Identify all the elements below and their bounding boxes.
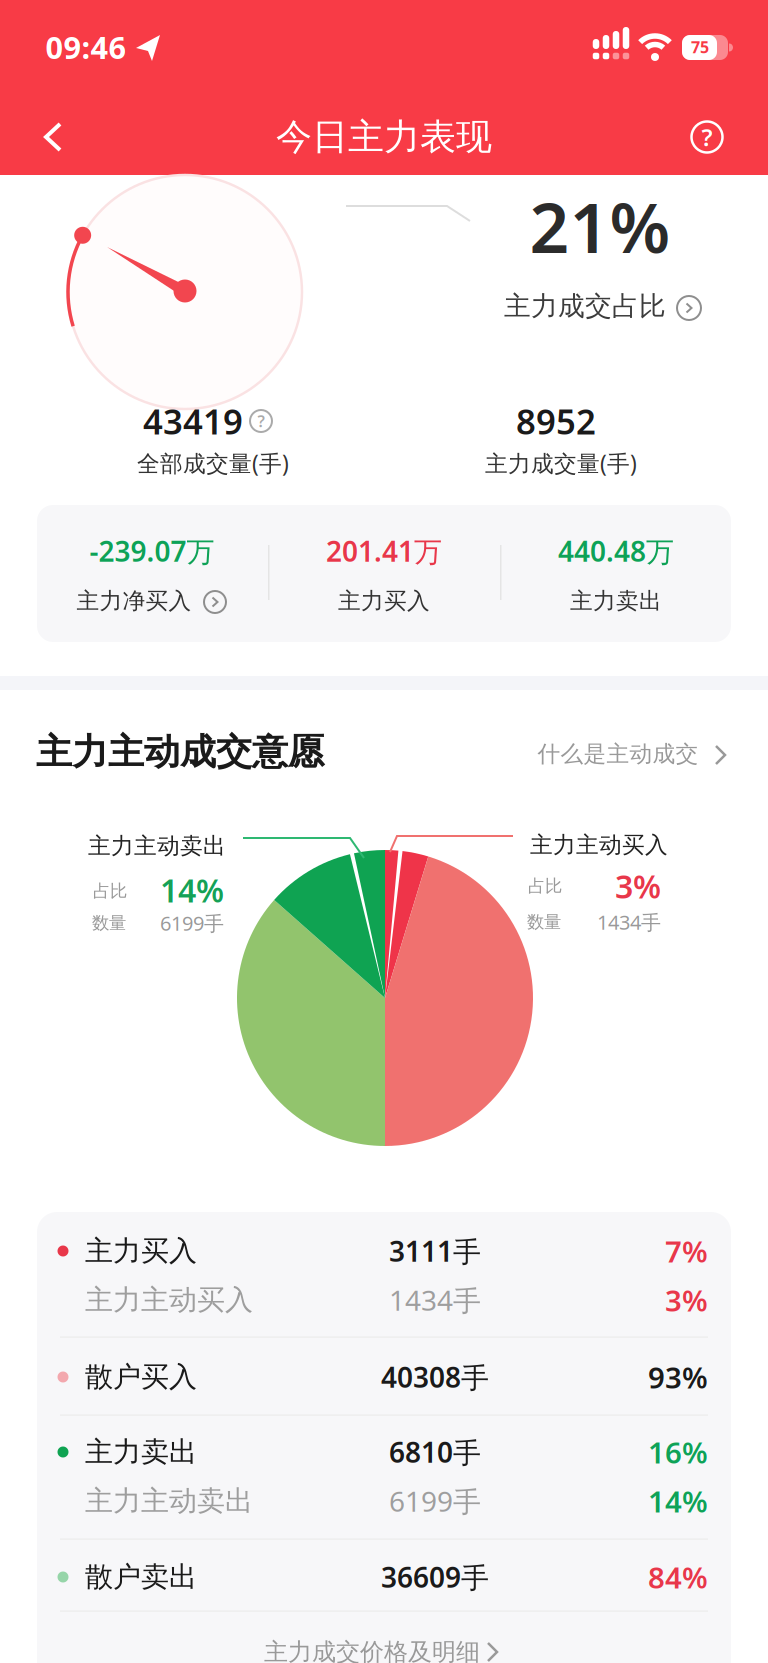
staticText: ? xyxy=(257,410,264,432)
button[interactable]: Back xyxy=(31,115,75,159)
staticText: 16% xyxy=(648,1432,708,1471)
staticText: 全部成交量(手) xyxy=(137,448,289,478)
staticText: 1434手 xyxy=(389,1281,481,1319)
staticText: 主力买入 xyxy=(85,1234,197,1268)
staticText: 8952 xyxy=(516,398,596,444)
staticText: 主力卖出 xyxy=(85,1435,197,1469)
staticText: 36609手 xyxy=(381,1558,489,1596)
staticText: 主力主动买入 xyxy=(85,1283,253,1317)
staticText: 主力成交占比 xyxy=(504,290,666,322)
staticText: 40308手 xyxy=(381,1358,489,1396)
staticText: 散户买入 xyxy=(85,1360,197,1394)
staticText: 6810手 xyxy=(389,1433,481,1471)
staticText: 主力主动卖出 xyxy=(88,832,226,860)
staticText: -239.07万 xyxy=(89,532,214,570)
button[interactable]: 主力净买入 xyxy=(62,579,242,623)
staticText: 21% xyxy=(529,180,670,272)
staticText: 数量 xyxy=(92,912,126,934)
button[interactable]: Help xyxy=(685,115,729,159)
staticText: 主力净买入 xyxy=(76,587,191,615)
staticText: 14% xyxy=(648,1481,708,1520)
staticText: 占比 xyxy=(528,875,562,897)
staticText: 今日主力表现 xyxy=(276,115,492,159)
staticText: 3111手 xyxy=(389,1232,481,1270)
button[interactable]: 全部成交量说明 xyxy=(245,405,277,437)
staticText: 7% xyxy=(665,1231,708,1270)
staticText: 主力成交价格及明细 xyxy=(264,1637,480,1663)
staticText: 440.48万 xyxy=(558,532,674,570)
staticText: 43419 xyxy=(143,398,243,444)
staticText: 14% xyxy=(160,869,224,911)
staticText: 6199手 xyxy=(160,910,224,936)
staticText: 占比 xyxy=(93,880,127,902)
button[interactable]: 主力成交价格及明细 xyxy=(244,1630,524,1663)
staticText: 主力卖出 xyxy=(570,587,662,615)
button[interactable]: 什么是主动成交 xyxy=(518,732,732,776)
staticText: 93% xyxy=(648,1357,708,1396)
staticText: 主力买入 xyxy=(338,587,430,615)
staticText: 散户卖出 xyxy=(85,1560,197,1594)
staticText: 1434手 xyxy=(597,909,661,935)
staticText: 什么是主动成交 xyxy=(537,740,698,768)
button[interactable]: 主力成交占比 xyxy=(495,284,705,328)
staticText: 84% xyxy=(648,1557,708,1596)
staticText: 09:46 xyxy=(45,27,126,67)
staticText: 75 xyxy=(691,36,709,58)
staticText: 主力主动买入 xyxy=(530,831,668,859)
staticText: 主力主动卖出 xyxy=(85,1484,253,1518)
staticText: 主力成交量(手) xyxy=(485,448,637,478)
staticText: 主力主动成交意愿 xyxy=(36,730,324,774)
staticText: 3% xyxy=(615,865,661,907)
staticText: 3% xyxy=(665,1280,708,1319)
staticText: 201.41万 xyxy=(326,532,442,570)
staticText: 数量 xyxy=(527,911,561,933)
staticText: 6199手 xyxy=(389,1482,481,1520)
staticText: ? xyxy=(701,121,712,153)
